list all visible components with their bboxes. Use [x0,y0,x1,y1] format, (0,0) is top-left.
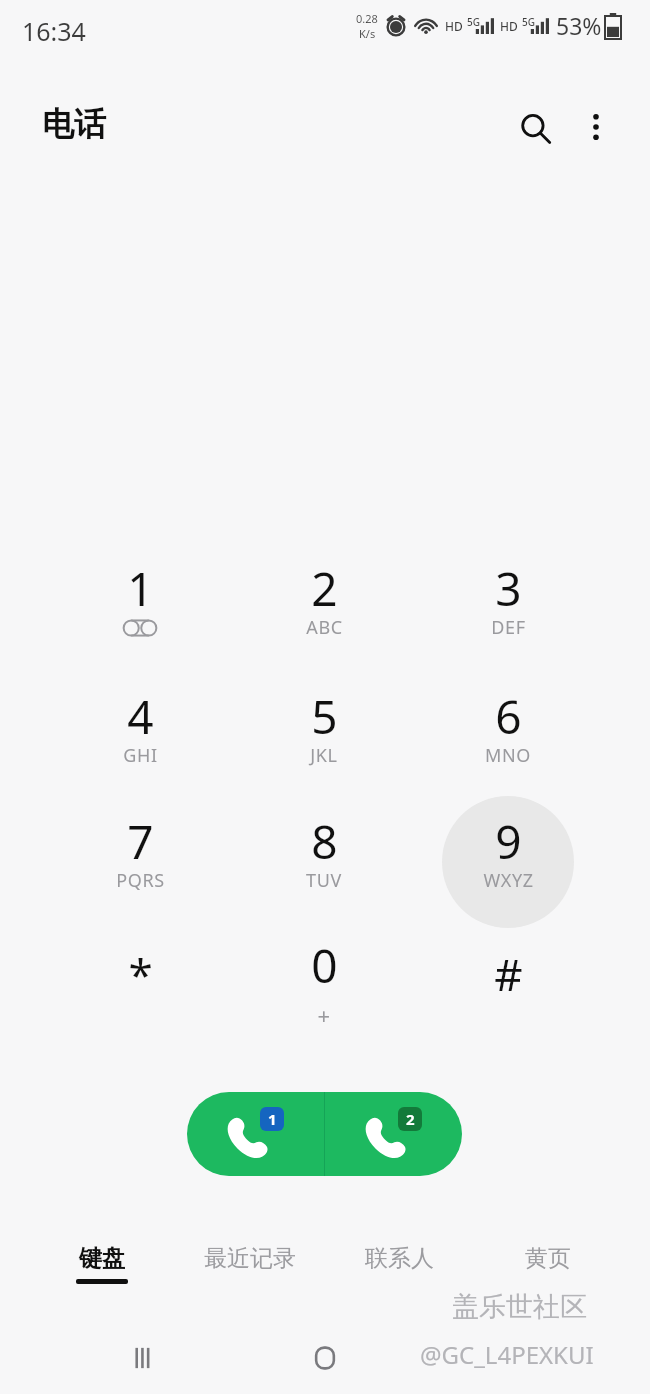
staticText: JKL [310,743,338,768]
staticText: 53% [556,10,602,41]
staticText: 5G [467,15,480,29]
staticText: # [494,944,523,1004]
staticText: 1 [127,557,154,620]
staticText: 联系人 [365,1244,434,1273]
staticText: 盖乐世社区 [452,1290,587,1324]
button[interactable]: 4 [48,671,232,795]
button[interactable]: Recents [108,1322,180,1394]
staticText: PQRS [116,868,165,893]
button[interactable]: Call with SIM 1 [187,1092,324,1176]
staticText: ABC [306,615,343,640]
staticText: K/s [359,26,376,41]
button[interactable]: 2 [232,543,416,667]
staticText: 黄页 [525,1244,571,1273]
button[interactable]: 键盘 [28,1232,176,1298]
button[interactable]: More options [569,100,623,154]
staticText: 5G [522,15,535,29]
button[interactable]: 0 [232,920,416,1044]
staticText: 0 [311,934,338,997]
staticText: 9 [495,810,522,873]
staticText: GHI [123,743,158,768]
staticText: 3 [495,557,522,620]
staticText: 2 [311,557,338,620]
button[interactable]: Back [470,1322,542,1394]
staticText: 4 [127,685,154,748]
staticText: 键盘 [79,1244,125,1273]
button[interactable]: Search [507,100,563,156]
button[interactable]: 黄页 [474,1232,622,1298]
button[interactable]: 1 [48,543,232,667]
button[interactable]: 9 [416,796,600,920]
button[interactable]: 3 [416,543,600,667]
staticText: 最近记录 [204,1244,296,1273]
staticText: * [128,944,153,1004]
staticText: 电话 [42,104,106,144]
button[interactable]: 8 [232,796,416,920]
button[interactable]: 最近记录 [176,1232,324,1298]
staticText: 1 [268,1109,277,1129]
staticText: TUV [306,868,342,893]
staticText: 0.28 [356,11,378,26]
button[interactable]: 6 [416,671,600,795]
staticText: 8 [311,810,338,873]
button[interactable]: * [48,920,232,1044]
staticText: HD [500,18,518,34]
staticText: 5 [311,685,338,748]
button[interactable]: Home [289,1322,361,1394]
staticText: WXYZ [483,868,534,893]
staticText: 6 [495,685,522,748]
button[interactable]: 联系人 [325,1232,473,1298]
staticText: 16:34 [22,14,86,48]
button[interactable]: 5 [232,671,416,795]
staticText: HD [445,18,463,34]
button[interactable]: Call with SIM 2 [325,1092,462,1176]
staticText: MNO [485,743,531,768]
staticText: @GC_L4PEXKUI [420,1338,594,1371]
staticText: 7 [127,810,154,873]
button[interactable]: # [416,920,600,1044]
button[interactable]: 7 [48,796,232,920]
staticText: + [317,1000,331,1030]
staticText: 2 [406,1109,415,1129]
staticText: DEF [491,615,526,640]
